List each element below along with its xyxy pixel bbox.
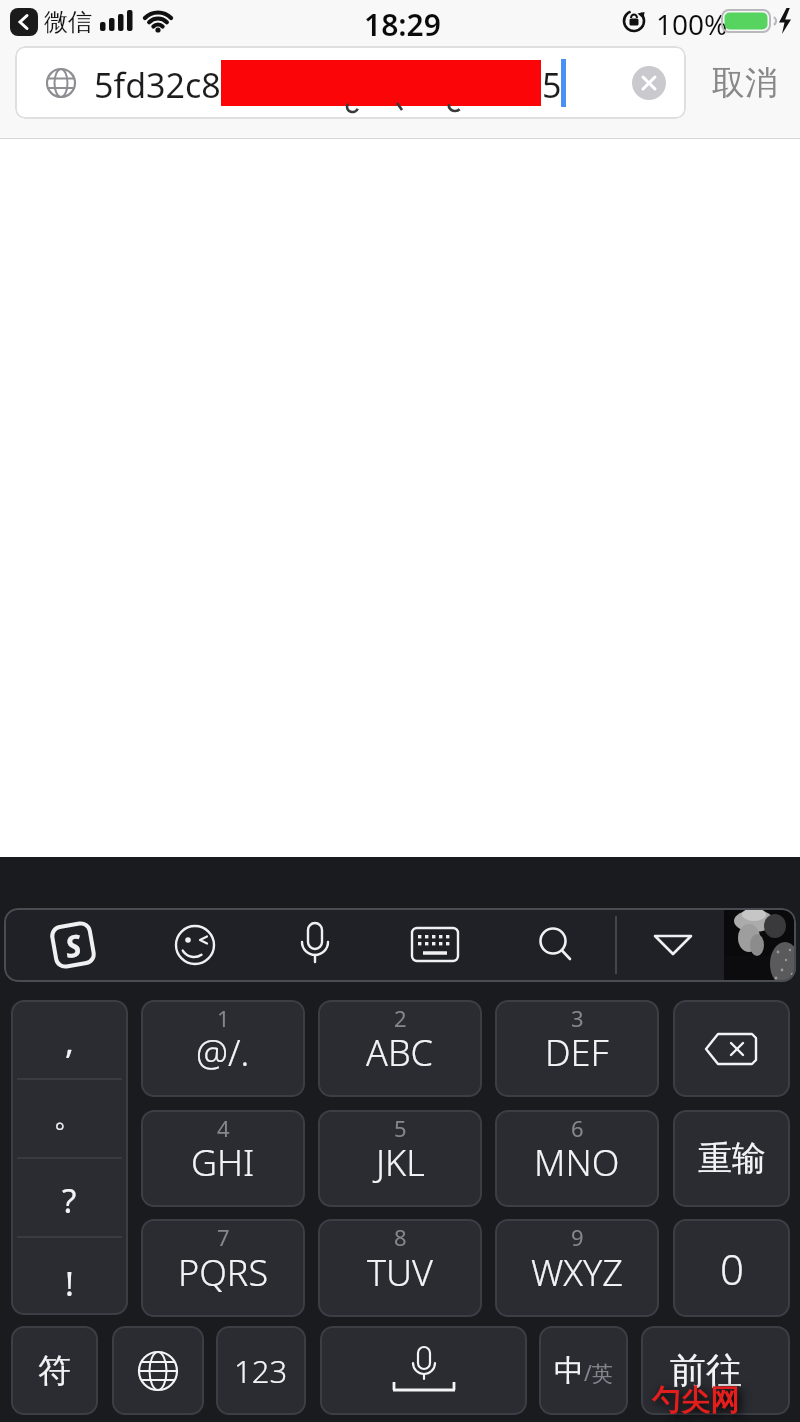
staticText: 9 — [571, 1222, 584, 1252]
staticText: 8 — [394, 1222, 407, 1252]
button[interactable]: 3 — [495, 1000, 659, 1097]
staticText: 123 — [234, 1350, 288, 1392]
button[interactable] — [411, 927, 461, 963]
staticText: 前往 — [670, 1348, 742, 1393]
staticText: , — [65, 1019, 74, 1064]
staticText: 5fd32c8 — [94, 62, 221, 108]
button[interactable] — [15, 46, 686, 119]
button[interactable]: 中/英 — [539, 1326, 628, 1415]
button[interactable]: 6 — [495, 1110, 659, 1207]
button[interactable] — [10, 8, 38, 36]
button[interactable] — [534, 923, 578, 967]
staticText: PQRS — [178, 1248, 269, 1297]
staticText: S — [62, 924, 84, 967]
button[interactable]: 取消 — [700, 58, 790, 108]
staticText: MNO — [534, 1138, 620, 1187]
button[interactable]: 重输 — [673, 1110, 790, 1207]
staticText: 微信 — [44, 7, 92, 37]
button[interactable]: 符 — [11, 1326, 98, 1415]
button[interactable]: 1 — [141, 1000, 305, 1097]
staticText: TUV — [367, 1248, 433, 1297]
button[interactable] — [295, 920, 335, 970]
button[interactable]: 4 — [141, 1110, 305, 1207]
staticText: 18:29 — [364, 4, 441, 45]
staticText: ? — [62, 1178, 77, 1223]
staticText: 重输 — [698, 1137, 766, 1180]
button[interactable]: 5 — [318, 1110, 482, 1207]
staticText: 6 — [571, 1113, 584, 1143]
button[interactable] — [632, 66, 666, 100]
button[interactable]: 前往 — [641, 1326, 790, 1415]
staticText: 2 — [394, 1003, 407, 1033]
button[interactable]: 123 — [216, 1326, 306, 1415]
staticText: 取消 — [712, 62, 778, 104]
staticText: 3 — [571, 1003, 584, 1033]
button[interactable]: 7 — [141, 1219, 305, 1317]
button[interactable]: S — [48, 920, 97, 970]
staticText: 7 — [217, 1222, 230, 1252]
staticText: 5 — [542, 62, 562, 108]
button[interactable]: 2 — [318, 1000, 482, 1097]
button[interactable] — [112, 1326, 204, 1415]
button[interactable]: , — [11, 1000, 128, 1315]
staticText: GHI — [191, 1138, 255, 1187]
staticText: ABC — [366, 1028, 434, 1077]
button[interactable] — [648, 930, 698, 960]
staticText: 中/英 — [554, 1352, 613, 1390]
staticText: DEF — [545, 1028, 609, 1077]
button[interactable]: 0 — [673, 1219, 790, 1317]
staticText: JKL — [376, 1138, 425, 1187]
button[interactable]: 9 — [495, 1219, 659, 1317]
staticText: ! — [65, 1261, 74, 1306]
button[interactable]: 8 — [318, 1219, 482, 1317]
button[interactable] — [320, 1326, 527, 1415]
staticText: @/. — [196, 1028, 250, 1077]
staticText: 4 — [217, 1113, 230, 1143]
button[interactable] — [673, 1000, 790, 1097]
staticText: 1 — [217, 1003, 230, 1033]
staticText: WXYZ — [531, 1248, 624, 1297]
staticText: 符 — [38, 1350, 71, 1392]
button[interactable] — [173, 923, 217, 967]
staticText: 勺尖网 — [652, 1382, 739, 1419]
staticText: 0 — [720, 1240, 744, 1297]
staticText: 100% — [656, 5, 728, 43]
staticText: 。 — [53, 1094, 86, 1136]
staticText: 5 — [394, 1113, 407, 1143]
